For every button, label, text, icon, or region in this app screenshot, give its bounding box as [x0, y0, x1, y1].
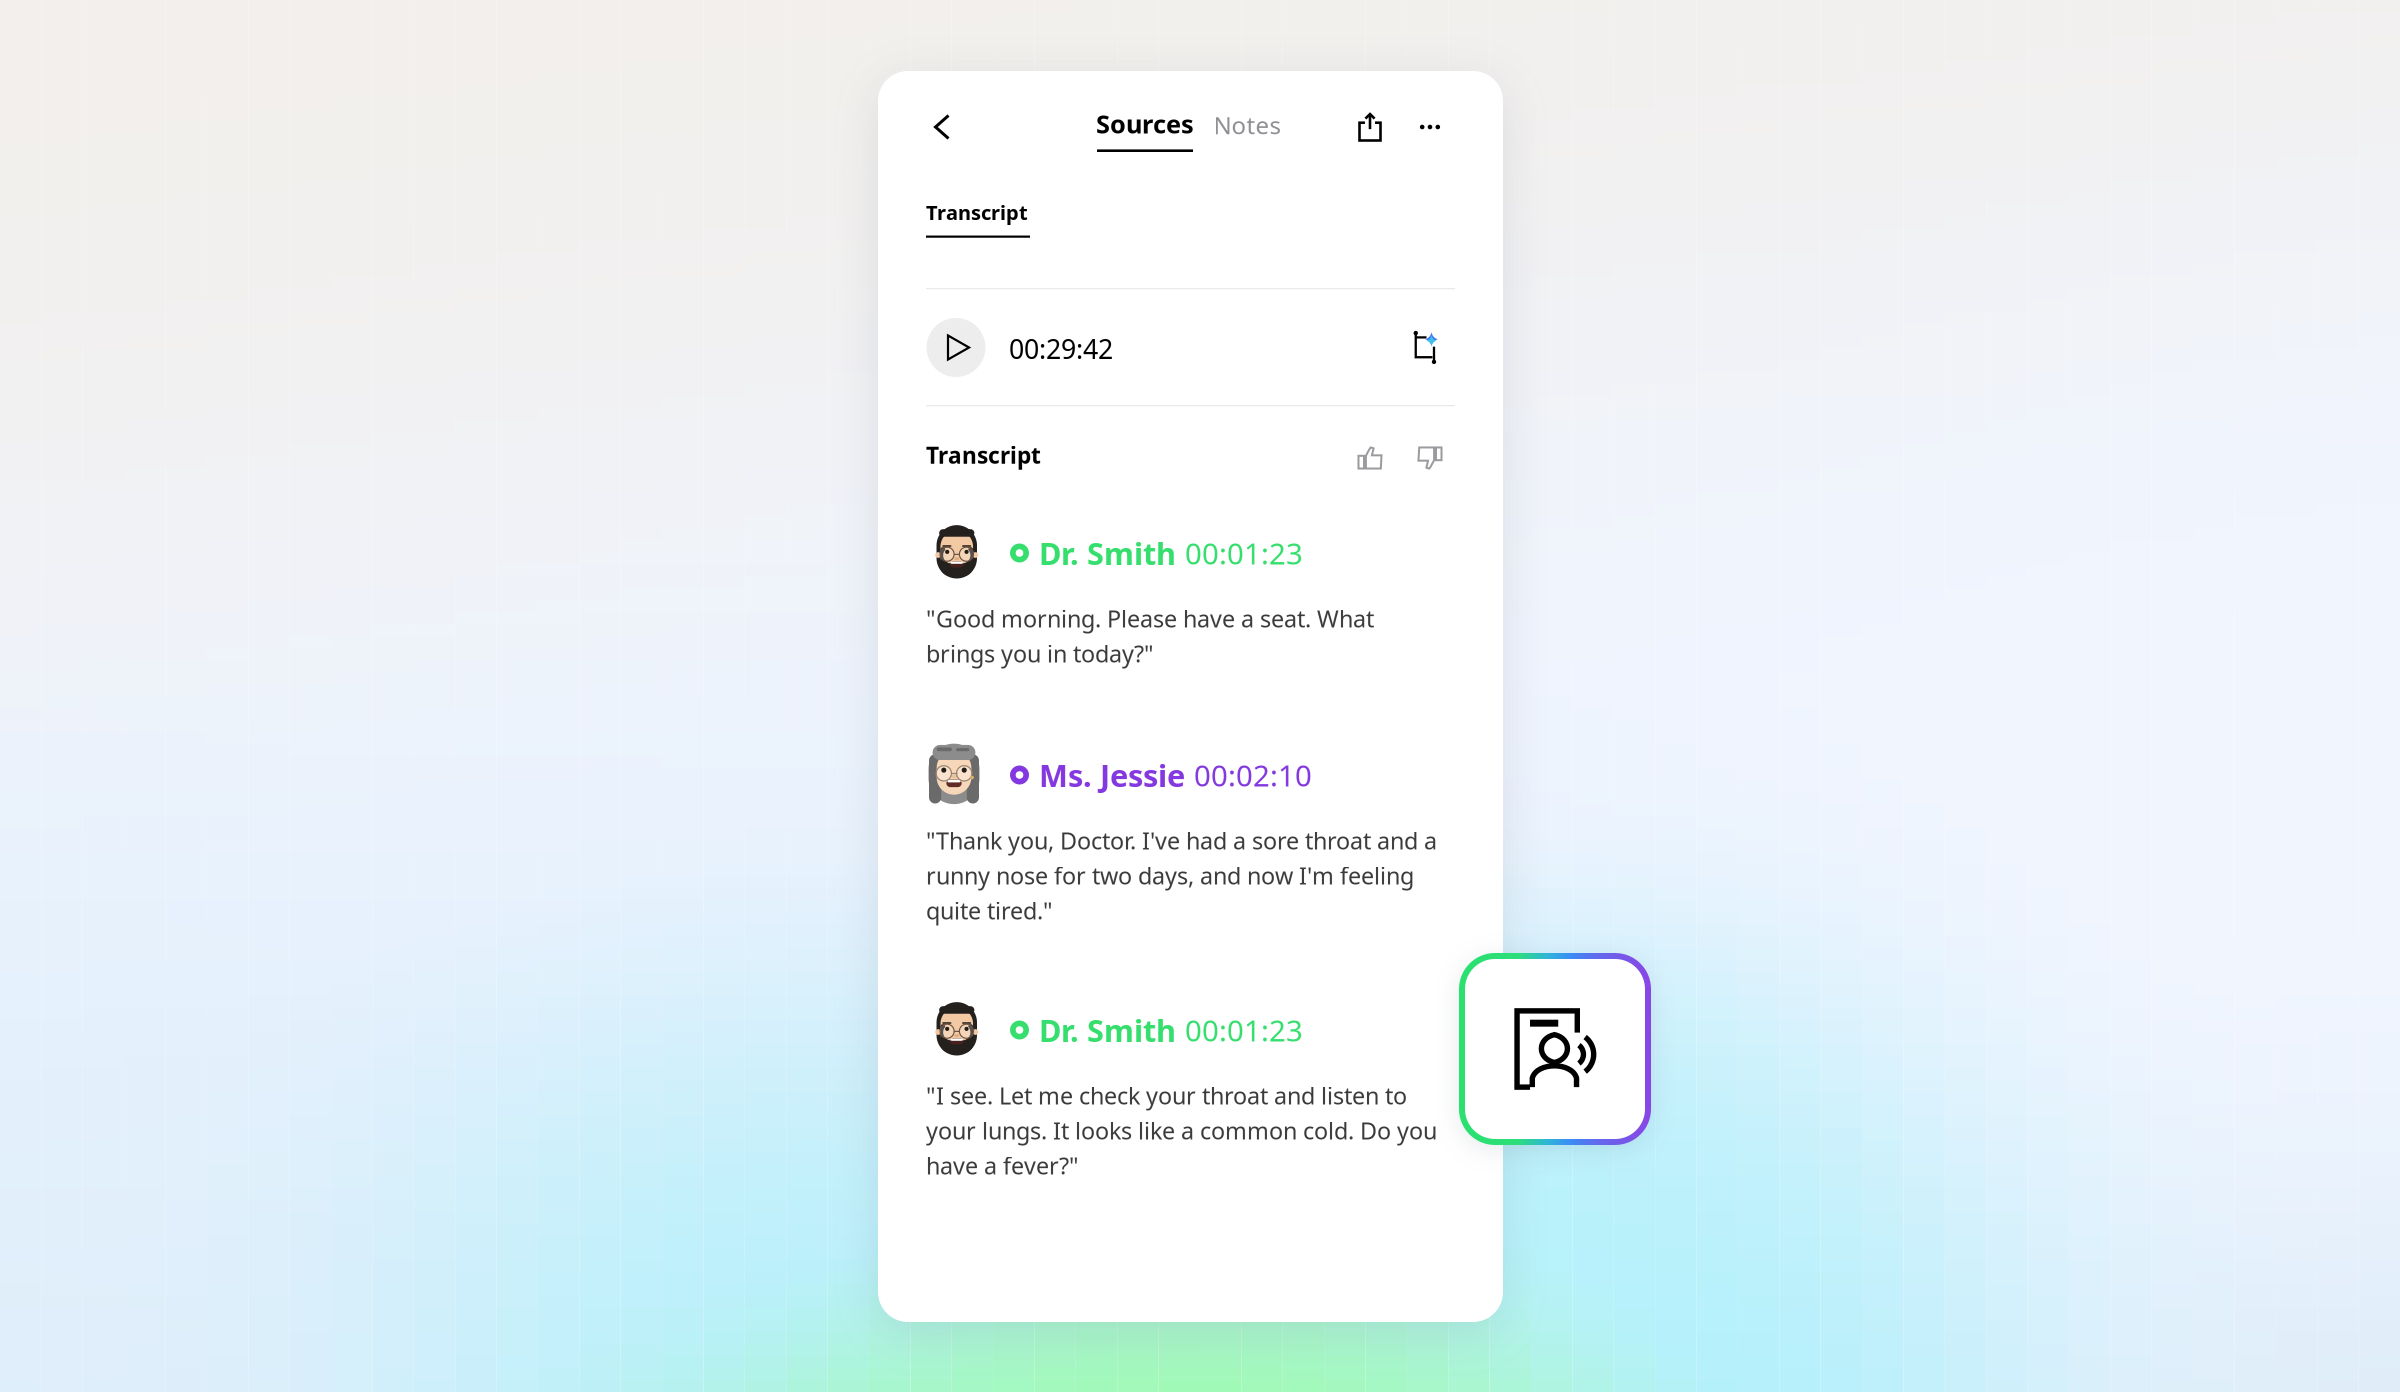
staticText: Notes — [1213, 109, 1280, 141]
staticText: 00:02:10 — [1194, 755, 1312, 794]
button[interactable]: AI summary — [1404, 325, 1448, 369]
button[interactable]: Notes — [1208, 105, 1286, 145]
button[interactable]: Play recording — [926, 318, 985, 377]
staticText: Sources — [1096, 107, 1194, 140]
staticText: 00:01:23 — [1185, 533, 1303, 572]
button[interactable]: More options — [1408, 105, 1452, 149]
button[interactable]: Back — [918, 103, 966, 151]
staticText: Ms. Jessie — [1039, 755, 1185, 795]
button[interactable]: Good transcript — [1348, 436, 1392, 480]
button[interactable]: Share — [1348, 105, 1392, 149]
button[interactable]: Bad transcript — [1408, 436, 1452, 480]
staticText: Transcript — [926, 440, 1041, 470]
staticText: 00:01:23 — [1185, 1010, 1303, 1049]
staticText: 00:29:42 — [1009, 331, 1113, 366]
button[interactable]: Sources — [1089, 100, 1201, 152]
staticText: "Thank you, Doctor. I've had a sore thro… — [926, 825, 1437, 926]
staticText: "I see. Let me check your throat and lis… — [926, 1080, 1437, 1181]
staticText: Transcript — [926, 199, 1028, 226]
staticText: "Good morning. Please have a seat. What … — [926, 603, 1374, 669]
button[interactable]: Transcript — [926, 199, 1036, 238]
staticText: Dr. Smith — [1039, 1010, 1176, 1050]
staticText: Dr. Smith — [1039, 533, 1176, 573]
